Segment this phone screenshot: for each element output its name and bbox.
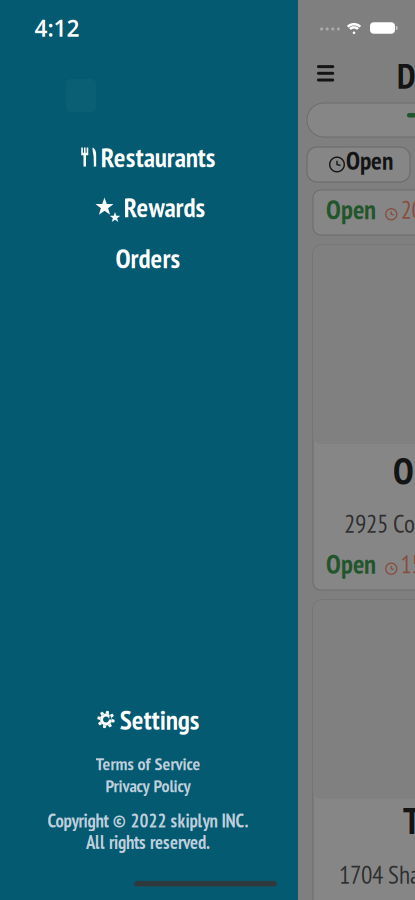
button[interactable]: Orchid Thai Cuisine (313, 245, 415, 590)
staticText: 15 min until closing (400, 547, 415, 580)
staticText: Open (326, 546, 376, 581)
staticText: Settings (120, 702, 200, 737)
staticText: Restaurants (101, 139, 216, 175)
button[interactable]: Privacy Policy (105, 774, 190, 797)
staticText: Rewards (123, 189, 205, 225)
staticText: All rights reserved. (86, 830, 210, 854)
staticText: 4:12 (34, 13, 79, 43)
staticText: Orchid Thai Cuisine (393, 446, 415, 494)
staticText: Open (346, 144, 393, 177)
staticText: 2925 College Ave, Berkeley, CA (344, 507, 415, 540)
staticText: Dashboard (397, 53, 415, 98)
button[interactable]: Thai Noodle House (313, 600, 415, 900)
staticText: 1704 Shattuck Ave, Berkeley, CA (339, 858, 415, 891)
button[interactable]: Menu (317, 65, 334, 81)
button[interactable]: Restaurants (81, 139, 216, 175)
button[interactable]: Orders (115, 240, 180, 276)
button[interactable]: Search (307, 103, 415, 137)
button[interactable]: Open (313, 190, 415, 235)
staticText: Thai Noodle House (403, 796, 415, 844)
staticText: 20 min until closing (400, 193, 415, 226)
button[interactable]: Rewards (91, 189, 205, 225)
button[interactable]: Settings (97, 702, 200, 737)
staticText: Privacy Policy (105, 774, 190, 797)
staticText: Copyright © 2022 skiplyn INC. (47, 808, 248, 833)
staticText: Terms of Service (95, 752, 200, 775)
staticText: Open (326, 192, 376, 226)
staticText: Orders (115, 240, 180, 276)
button[interactable]: Terms of Service (95, 752, 200, 775)
button[interactable]: Open (307, 147, 410, 182)
